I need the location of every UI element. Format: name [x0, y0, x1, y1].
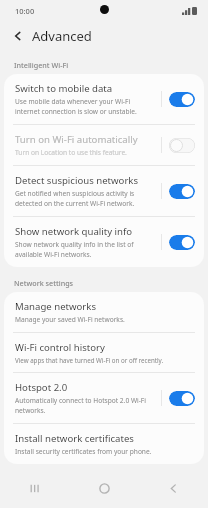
button[interactable]: Switch on	[169, 92, 195, 107]
staticText: Use mobile data whenever your Wi-Fi inte…	[15, 97, 137, 116]
button[interactable]: Switch off	[169, 138, 195, 153]
staticText: Advanced	[32, 27, 92, 45]
button[interactable]: Detect suspicious networks	[4, 166, 204, 216]
staticText: Automatically connect to Hotspot 2.0 Wi-…	[15, 396, 146, 415]
staticText: Intelligent Wi-Fi	[14, 60, 69, 70]
staticText: Hotspot 2.0	[15, 381, 68, 394]
staticText: 10:00	[15, 6, 35, 16]
button[interactable]: Switch on	[169, 235, 195, 250]
staticText: Show network quality info	[15, 225, 133, 238]
button[interactable]: Recents	[17, 470, 53, 506]
button[interactable]: Install network certificates	[4, 424, 204, 464]
button[interactable]: Show network quality info	[4, 217, 204, 267]
button[interactable]: Switch on	[169, 391, 195, 406]
button[interactable]: Home	[86, 470, 122, 506]
staticText: Install network certificates	[15, 432, 134, 445]
button[interactable]: Switch to mobile data	[4, 74, 204, 124]
staticText: Network settings	[14, 278, 74, 288]
button[interactable]: Turn on Wi-Fi automatically	[4, 125, 204, 165]
staticText: Turn on Location to use this feature.	[15, 148, 127, 157]
staticText: Switch to mobile data	[15, 82, 113, 95]
staticText: Turn on Wi-Fi automatically	[15, 133, 138, 146]
button[interactable]: Hotspot 2.0	[4, 373, 204, 423]
button[interactable]: Back	[7, 25, 29, 47]
staticText: View apps that have turned Wi-Fi on or o…	[15, 356, 164, 364]
button[interactable]: Wi-Fi control history	[4, 333, 204, 372]
button[interactable]: Switch on	[169, 184, 195, 199]
staticText: Detect suspicious networks	[15, 174, 139, 187]
staticText: Get notified when suspicious activity is…	[15, 189, 135, 208]
staticText: Wi-Fi control history	[15, 341, 105, 354]
staticText: Manage your saved Wi-Fi networks.	[15, 315, 125, 324]
staticText: Install security certificates from your …	[15, 447, 152, 456]
button[interactable]: Manage networks	[4, 292, 204, 332]
staticText: Manage networks	[15, 300, 97, 313]
staticText: Show network quality info in the list of…	[15, 240, 134, 259]
button[interactable]: Back	[155, 470, 191, 506]
